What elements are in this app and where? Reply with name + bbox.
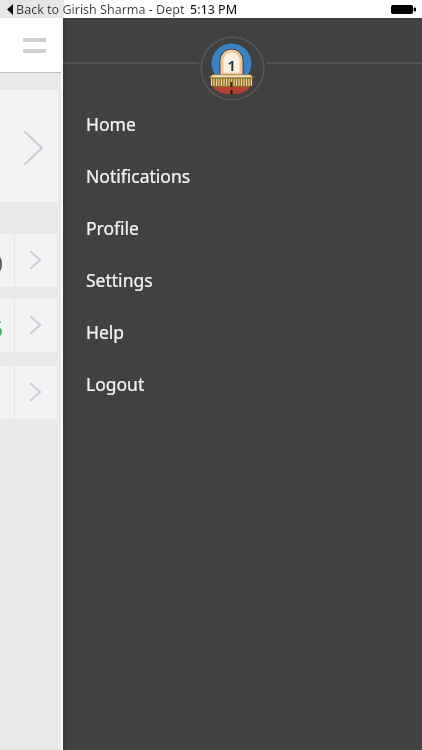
staticText: Notifications bbox=[86, 164, 191, 188]
staticText: 5:13 PM bbox=[190, 1, 238, 18]
button[interactable] bbox=[15, 299, 57, 352]
button[interactable]: Settings bbox=[63, 254, 422, 306]
staticText: 5 bbox=[0, 315, 4, 344]
staticText: Home bbox=[86, 112, 136, 136]
button[interactable] bbox=[15, 366, 57, 419]
button[interactable]: Profile bbox=[63, 202, 422, 254]
button[interactable]: Help bbox=[63, 306, 422, 358]
staticText: Help bbox=[86, 320, 125, 344]
button[interactable] bbox=[15, 234, 57, 287]
staticText: 0 bbox=[0, 250, 4, 279]
button[interactable]: Logout bbox=[63, 358, 422, 410]
button[interactable]: Open navigation menu bbox=[8, 26, 60, 64]
button[interactable]: Home bbox=[63, 98, 422, 150]
button[interactable]: Notifications bbox=[63, 150, 422, 202]
staticText: 1 bbox=[227, 55, 236, 75]
staticText: Back to Girish Sharma - Dept bbox=[16, 1, 185, 18]
button[interactable] bbox=[0, 90, 58, 202]
staticText: Settings bbox=[86, 268, 153, 292]
staticText: Profile bbox=[86, 216, 139, 240]
staticText: Logout bbox=[86, 372, 145, 396]
